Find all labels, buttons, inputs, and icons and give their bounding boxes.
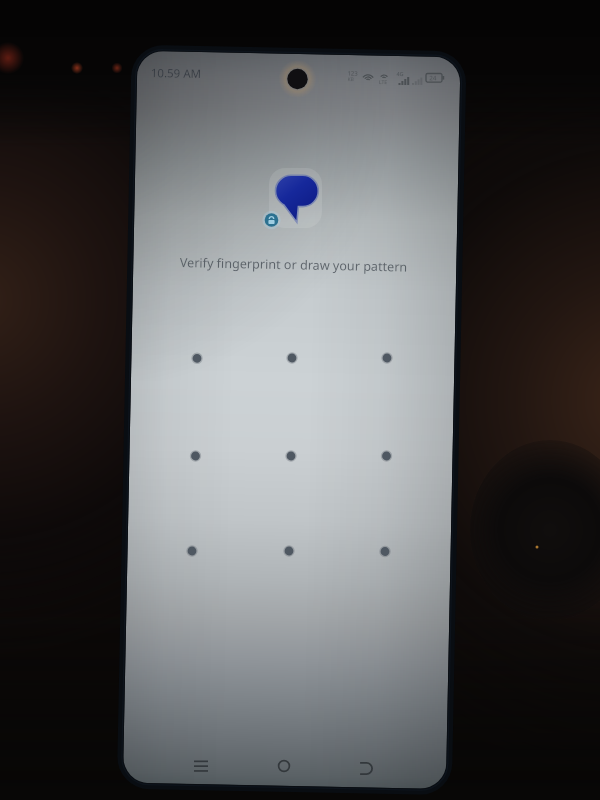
button[interactable]: Lock screen pattern xyxy=(0,0,600,800)
